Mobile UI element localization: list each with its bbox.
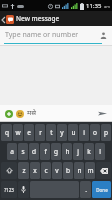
staticText: 11:35 <box>86 2 102 10</box>
staticText: w <box>15 128 21 137</box>
staticText: मसे <box>27 108 36 118</box>
staticText: Done <box>96 187 108 193</box>
button[interactable]: t <box>46 124 56 141</box>
button[interactable]: w <box>13 124 23 141</box>
staticText: p <box>104 128 108 137</box>
button[interactable]: j <box>73 143 83 160</box>
staticText: s <box>21 147 25 156</box>
staticText: d <box>32 147 36 156</box>
staticText: Type name or number <box>5 30 79 40</box>
button[interactable]: Type name or number <box>5 30 97 40</box>
staticText: e <box>27 128 31 137</box>
staticText: j <box>77 147 79 156</box>
button[interactable]: o <box>90 124 100 141</box>
button[interactable]: y <box>57 124 67 141</box>
staticText: i <box>83 128 85 137</box>
button[interactable]: v <box>52 162 62 179</box>
button[interactable]: c <box>41 162 51 179</box>
staticText: ?123 <box>4 187 14 193</box>
button[interactable]: ?123 <box>1 181 17 198</box>
button[interactable]: m <box>85 162 95 179</box>
button[interactable]: h <box>62 143 72 160</box>
button[interactable]: p <box>101 124 111 141</box>
button[interactable]: e <box>24 124 34 141</box>
staticText: c <box>44 166 48 175</box>
staticText: x <box>33 166 37 175</box>
button[interactable]: Shift <box>1 162 17 179</box>
staticText: k <box>87 147 91 156</box>
staticText: z <box>22 166 26 175</box>
staticText: a <box>10 147 14 156</box>
button[interactable]: k <box>84 143 94 160</box>
button[interactable]: q <box>1 124 12 141</box>
staticText: b <box>66 166 70 175</box>
button[interactable]: Add attachment <box>3 108 14 119</box>
button[interactable]: i <box>79 124 89 141</box>
button[interactable]: . <box>80 181 91 198</box>
staticText: r <box>39 128 42 137</box>
button[interactable]: n <box>74 162 84 179</box>
button[interactable]: a <box>7 143 17 160</box>
staticText: o <box>93 128 97 137</box>
button[interactable]: Voice input <box>18 181 29 198</box>
button[interactable]: f <box>40 143 50 160</box>
staticText: y <box>60 128 64 137</box>
staticText: n <box>77 166 82 175</box>
staticText: t <box>50 128 53 137</box>
staticText: f <box>44 147 47 156</box>
staticText: . <box>85 185 87 194</box>
staticText: q <box>5 128 9 137</box>
button[interactable]: Navigate up <box>2 13 14 25</box>
button[interactable]: x <box>30 162 40 179</box>
button[interactable]: Insert emoji <box>14 108 25 119</box>
staticText: h <box>65 147 70 156</box>
button[interactable]: s <box>18 143 28 160</box>
staticText: am <box>104 4 110 9</box>
button[interactable]: g <box>51 143 61 160</box>
staticText: v <box>55 166 59 175</box>
staticText: g <box>54 147 58 156</box>
button[interactable]: z <box>18 162 29 179</box>
button[interactable]: Backspace <box>96 162 111 179</box>
button[interactable]: u <box>68 124 78 141</box>
button[interactable]: r <box>35 124 45 141</box>
staticText: New message <box>16 14 60 23</box>
button[interactable]: Add recipient from contacts <box>97 29 109 41</box>
button[interactable]: Done <box>92 181 111 198</box>
staticText: u <box>71 128 76 137</box>
button[interactable]: b <box>63 162 73 179</box>
button[interactable]: l <box>95 143 105 160</box>
staticText: l <box>99 147 101 156</box>
button[interactable]: d <box>29 143 39 160</box>
button[interactable]: मसे <box>27 108 96 118</box>
button[interactable]: Send <box>96 107 109 120</box>
staticText: m <box>87 166 94 175</box>
